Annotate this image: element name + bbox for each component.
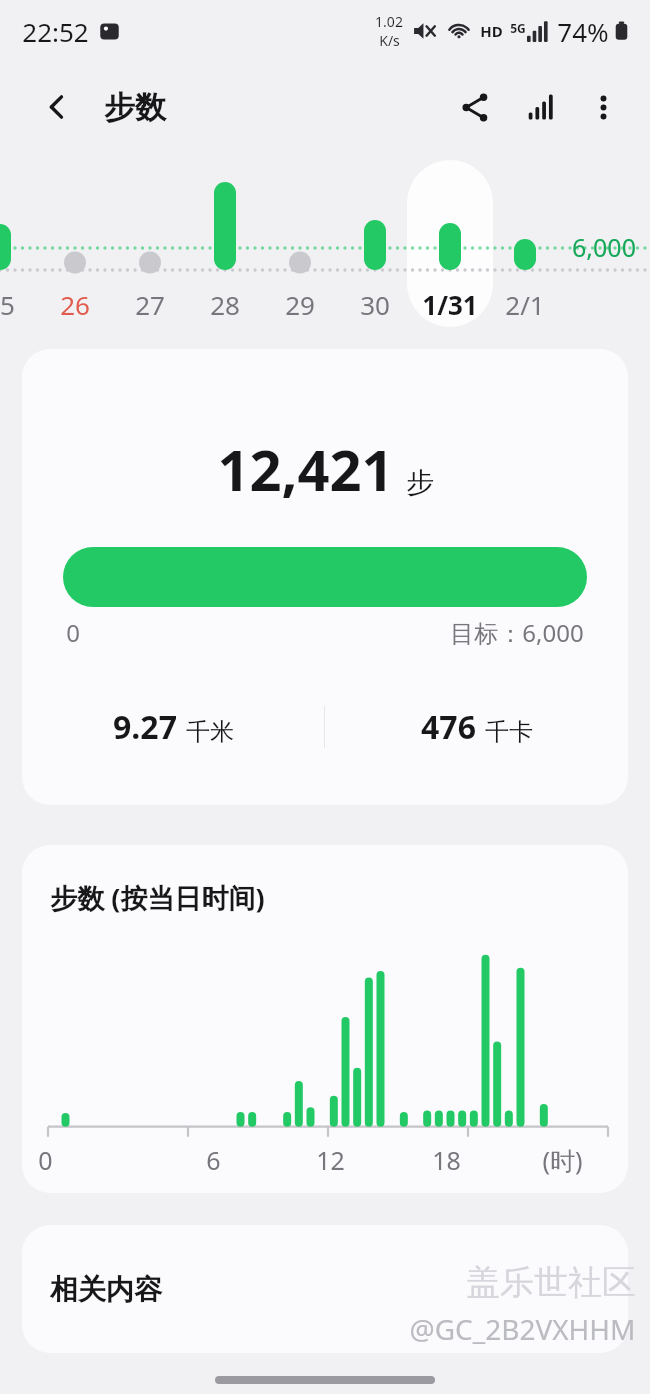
- button[interactable]: 步数 (按当日时间): [22, 845, 628, 1193]
- button[interactable]: 29: [263, 284, 337, 324]
- button[interactable]: 相关内容: [22, 1225, 628, 1353]
- staticText: 28: [210, 287, 240, 322]
- staticText: 476: [421, 705, 476, 749]
- button[interactable]: Back: [32, 82, 82, 132]
- staticText: 6: [206, 1143, 221, 1177]
- button[interactable]: 1/31: [413, 284, 487, 324]
- staticText: 12,421: [217, 431, 394, 507]
- staticText: 步: [406, 465, 434, 500]
- staticText: 0: [38, 1143, 53, 1177]
- staticText: @GC_2B2VXHHM: [409, 1310, 636, 1348]
- staticText: 5G: [510, 20, 526, 36]
- staticText: 2/1: [505, 287, 545, 322]
- staticText: 12: [316, 1143, 345, 1177]
- staticText: 27: [135, 287, 165, 322]
- button[interactable]: 25: [0, 284, 37, 324]
- staticText: 22:52: [22, 14, 89, 49]
- staticText: 目标：6,000: [450, 616, 584, 649]
- button[interactable]: 28: [188, 284, 262, 324]
- staticText: 29: [285, 287, 315, 322]
- staticText: 1/31: [422, 287, 478, 322]
- staticText: 千卡: [485, 717, 533, 747]
- staticText: 18: [432, 1143, 461, 1177]
- staticText: (时): [542, 1143, 583, 1177]
- button[interactable]: 12,421: [22, 349, 628, 805]
- staticText: 步数: [104, 88, 166, 127]
- button[interactable]: 26: [38, 284, 112, 324]
- staticText: 25: [0, 287, 15, 322]
- staticText: HD: [480, 21, 503, 41]
- staticText: 0: [66, 616, 80, 649]
- staticText: 步数 (按当日时间): [50, 879, 265, 916]
- button[interactable]: 27: [113, 284, 187, 324]
- button[interactable]: Share: [448, 80, 502, 134]
- button[interactable]: Trends chart: [514, 80, 568, 134]
- staticText: 6,000: [572, 230, 636, 264]
- button[interactable]: More options: [576, 80, 630, 134]
- staticText: 相关内容: [50, 1272, 162, 1307]
- staticText: 1.02: [375, 12, 403, 31]
- staticText: 74%: [557, 14, 609, 49]
- button[interactable]: 30: [338, 284, 412, 324]
- staticText: 26: [60, 287, 90, 322]
- staticText: 30: [360, 287, 390, 322]
- staticText: 千米: [186, 717, 234, 747]
- staticText: K/s: [379, 31, 400, 50]
- button[interactable]: 2/1: [488, 284, 562, 324]
- staticText: 盖乐世社区: [466, 1261, 636, 1304]
- staticText: 9.27: [113, 705, 177, 749]
